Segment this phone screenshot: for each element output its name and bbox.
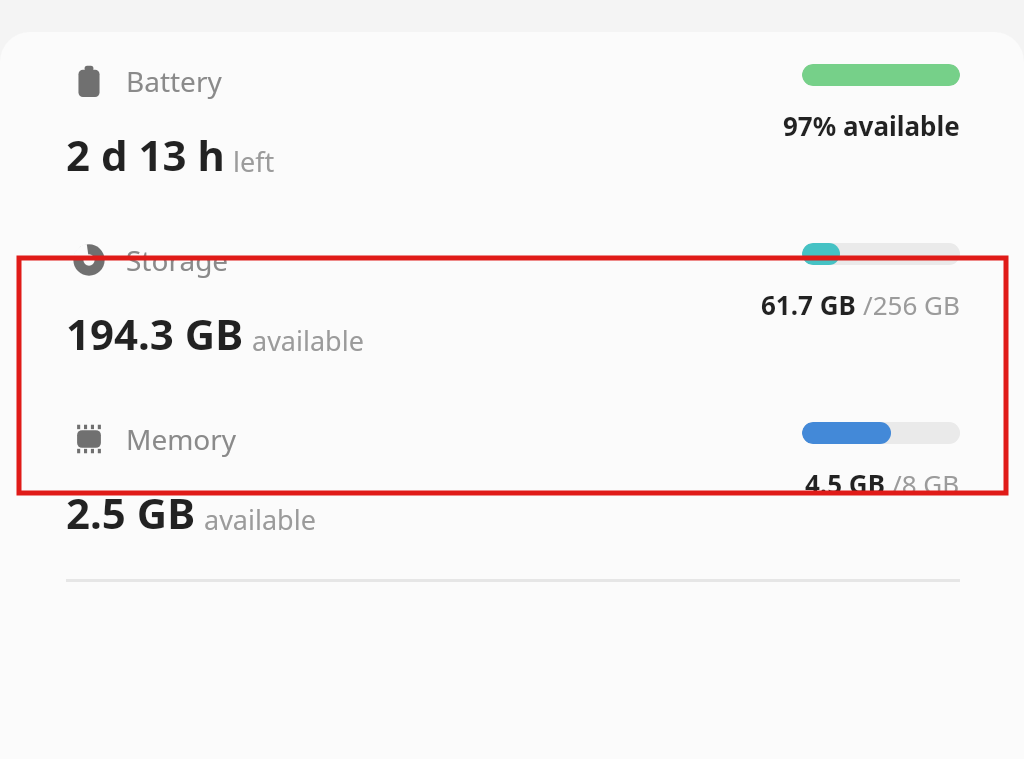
staticText: available (204, 501, 316, 538)
staticText: /256 GB (863, 287, 960, 322)
button[interactable]: Battery (0, 62, 1024, 183)
staticText: 4.5 GB (805, 466, 892, 501)
other: Battery (72, 64, 106, 98)
staticText: 97% available (783, 108, 960, 143)
other: Storage (72, 243, 106, 277)
staticText: available (252, 322, 364, 359)
staticText: 194.3 GB (66, 305, 244, 362)
staticText: Battery (126, 62, 222, 100)
staticText: 2 d 13 h (66, 126, 225, 183)
other: Memory (72, 422, 106, 456)
staticText: Storage (126, 241, 229, 279)
button[interactable]: Storage (0, 241, 1024, 362)
staticText: 2.5 GB (66, 484, 196, 541)
staticText: 61.7 GB (761, 287, 863, 322)
staticText: Memory (126, 420, 237, 458)
staticText: /8 GB (892, 466, 960, 501)
staticText: left (233, 143, 275, 180)
button[interactable]: Memory (0, 420, 1024, 541)
